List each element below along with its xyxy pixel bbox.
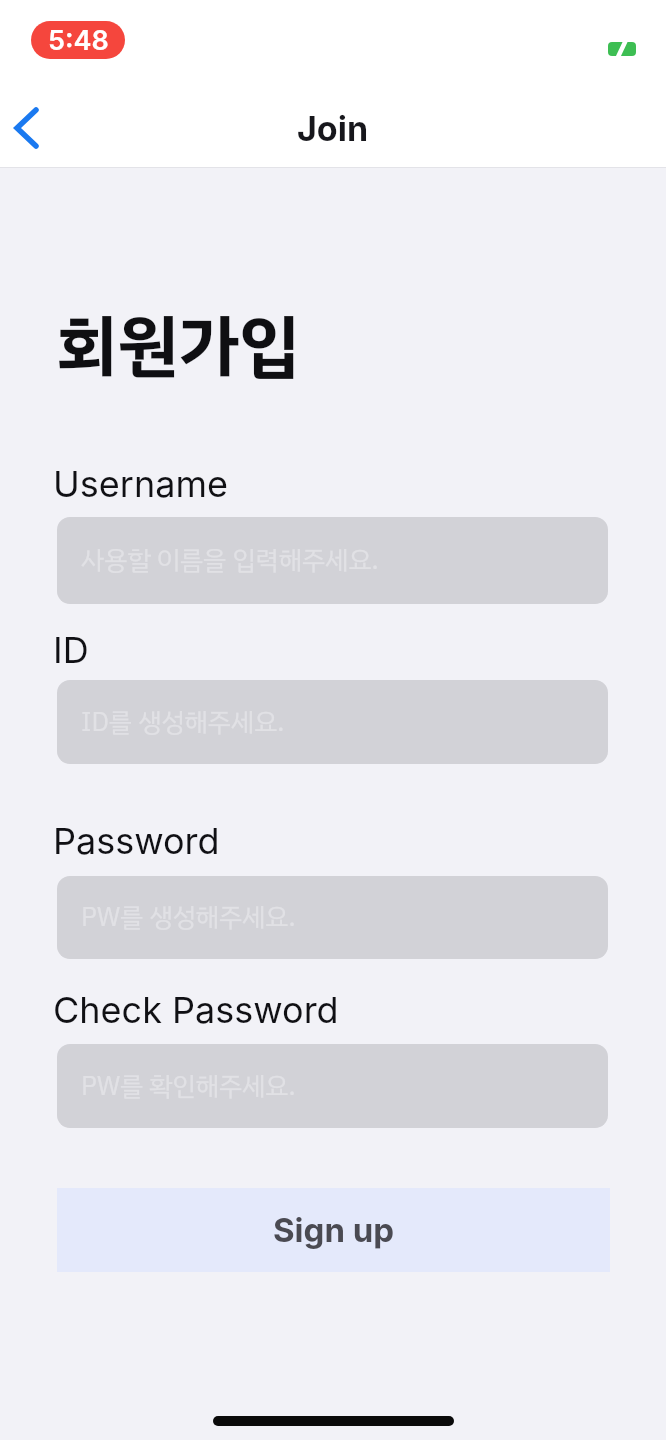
staticText: Username [53,462,228,506]
staticText: Password [53,819,220,863]
staticText: Join [297,108,369,149]
staticText: 5:48 [48,24,109,57]
staticText: 회원가입 [57,295,300,397]
staticText: ID [53,628,89,672]
staticText: PW를 확인해주세요. [81,1067,296,1106]
staticText: PW를 생성해주세요. [81,898,296,937]
button[interactable] [6,100,50,156]
staticText: Sign up [273,1210,395,1250]
staticText: 사용할 이름을 입력해주세요. [81,541,379,580]
button[interactable]: Sign up [57,1188,610,1272]
button[interactable]: 5:48 [31,21,125,59]
staticText: ID를 생성해주세요. [81,703,285,742]
staticText: Check Password [53,988,339,1032]
button[interactable]: 사용할 이름을 입력해주세요. [57,517,608,604]
